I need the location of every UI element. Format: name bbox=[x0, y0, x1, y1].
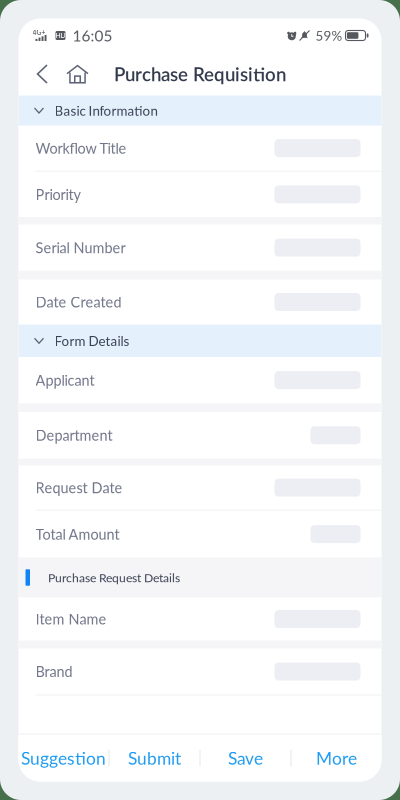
button[interactable]: Back bbox=[29, 53, 57, 95]
staticText: Item Name bbox=[35, 610, 106, 628]
staticText: Form Details bbox=[54, 333, 129, 349]
button[interactable]: More bbox=[291, 734, 381, 781]
staticText: Total Amount bbox=[35, 525, 119, 543]
staticText: Purchase Request Details bbox=[48, 570, 180, 585]
staticText: Department bbox=[35, 427, 112, 444]
button[interactable]: Submit bbox=[109, 734, 199, 781]
staticText: Suggestion bbox=[21, 748, 106, 768]
button[interactable]: Priority bbox=[18, 172, 381, 217]
button[interactable]: Home bbox=[57, 53, 93, 95]
button[interactable]: Total Amount bbox=[18, 511, 381, 558]
button[interactable]: Date Created bbox=[18, 279, 381, 324]
button[interactable]: Applicant bbox=[18, 357, 381, 403]
button[interactable]: Form Details bbox=[18, 324, 381, 357]
staticText: Basic Information bbox=[54, 102, 157, 118]
staticText: More bbox=[316, 748, 357, 768]
staticText: Submit bbox=[128, 748, 181, 768]
button[interactable]: Brand bbox=[18, 648, 381, 694]
staticText: Serial Number bbox=[35, 239, 125, 256]
staticText: Brand bbox=[35, 663, 72, 680]
staticText: Save bbox=[228, 748, 263, 768]
button[interactable]: Suggestion bbox=[18, 734, 108, 781]
staticText: Applicant bbox=[35, 371, 94, 389]
button[interactable]: Request Date bbox=[18, 465, 381, 510]
staticText: 4G+ bbox=[32, 28, 45, 36]
staticText: Request Date bbox=[35, 479, 122, 496]
button[interactable]: Workflow Title bbox=[18, 125, 381, 171]
staticText: HD bbox=[55, 31, 65, 39]
button[interactable]: Serial Number bbox=[18, 224, 381, 271]
staticText: 16:05 bbox=[72, 26, 112, 45]
button[interactable]: Save bbox=[200, 734, 290, 781]
staticText: 59% bbox=[315, 27, 342, 43]
staticText: Workflow Title bbox=[35, 139, 126, 157]
staticText: Purchase Requisition bbox=[114, 63, 286, 85]
button[interactable]: Item Name bbox=[18, 597, 381, 640]
staticText: Priority bbox=[35, 186, 80, 203]
button[interactable]: Department bbox=[18, 412, 381, 458]
staticText: Date Created bbox=[35, 293, 121, 311]
button[interactable]: Basic Information bbox=[18, 95, 381, 125]
